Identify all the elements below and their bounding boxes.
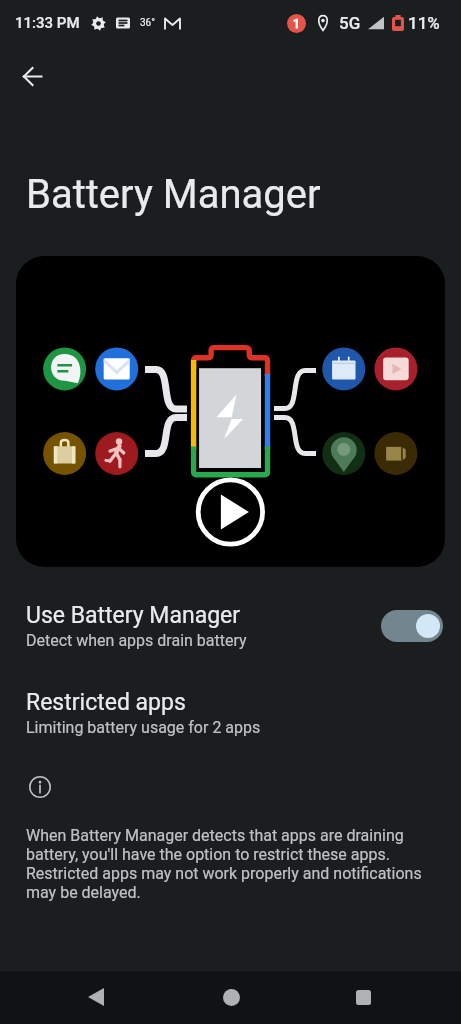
staticText: 36° [140,17,155,29]
button[interactable]: Battery Manager illustration, play video [16,256,445,567]
button[interactable]: Back [72,973,120,1021]
staticText: When Battery Manager detects that apps a… [26,826,428,902]
button[interactable]: Back [10,54,54,98]
staticText: Use Battery Manager [26,602,241,629]
staticText: Battery Manager [26,171,321,218]
staticText: Detect when apps drain battery [26,631,247,650]
staticText: Limiting battery usage for 2 apps [26,718,261,737]
staticText: Restricted apps [26,689,186,716]
button[interactable]: Home [207,973,255,1021]
button[interactable]: Restricted apps [0,679,461,747]
staticText: 1 [293,17,300,31]
staticText: 11:33 PM [15,14,80,32]
staticText: 5G [339,13,361,33]
button[interactable]: Recent apps [339,973,387,1021]
staticText: 11% [408,13,440,33]
button[interactable]: Use Battery Manager toggle [381,610,443,642]
button[interactable]: Use Battery Manager [0,595,461,657]
